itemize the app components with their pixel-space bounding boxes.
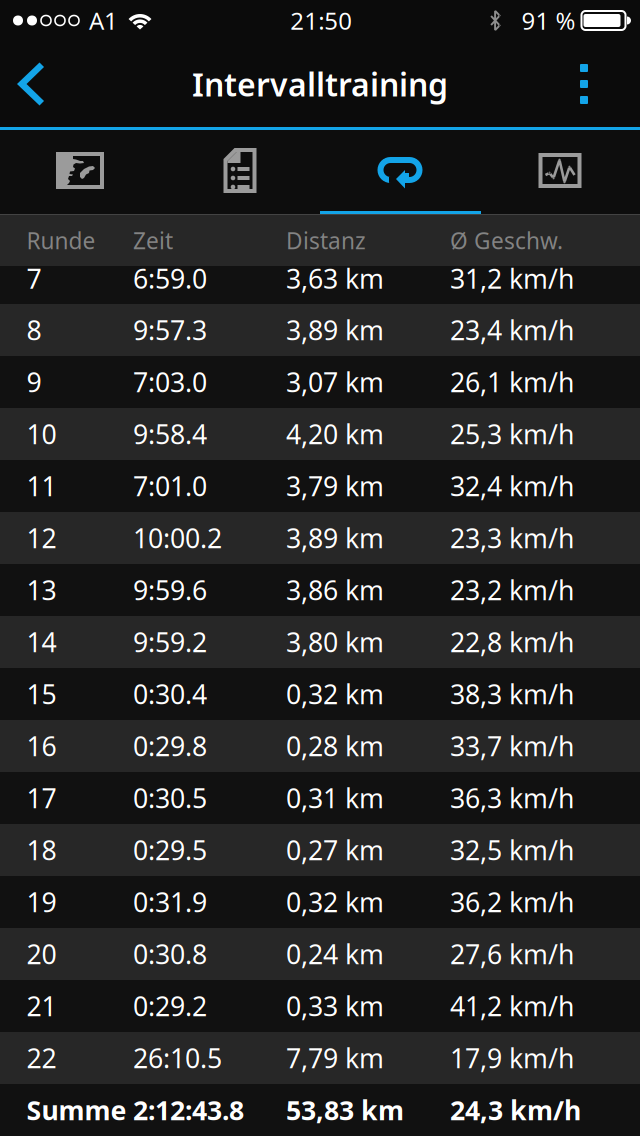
staticText: 2:12:43.8 bbox=[133, 1092, 244, 1128]
staticText: 19 bbox=[26, 884, 56, 920]
staticText: 7 bbox=[26, 261, 41, 296]
staticText: Runde bbox=[26, 225, 95, 255]
staticText: 10 bbox=[26, 416, 56, 452]
staticText: Zeit bbox=[133, 225, 173, 255]
staticText: 3,89 km bbox=[286, 312, 384, 348]
staticText: 15 bbox=[26, 676, 56, 712]
staticText: 4,20 km bbox=[286, 416, 384, 452]
staticText: 0:30.4 bbox=[133, 676, 207, 712]
staticText: Ø Geschw. bbox=[450, 225, 563, 255]
staticText: 3,07 km bbox=[286, 364, 384, 400]
button[interactable]: Laps bbox=[320, 130, 480, 211]
staticText: 6:59.0 bbox=[133, 261, 207, 296]
staticText: 9 bbox=[26, 364, 41, 400]
staticText: Intervalltraining bbox=[192, 63, 448, 105]
staticText: 0,32 km bbox=[286, 884, 384, 920]
staticText: A1 bbox=[89, 5, 118, 36]
staticText: 0:30.5 bbox=[133, 780, 207, 816]
staticText: 22,8 km/h bbox=[450, 624, 574, 660]
staticText: 26:10.5 bbox=[133, 1040, 222, 1076]
staticText: 16 bbox=[26, 728, 56, 764]
staticText: 11 bbox=[26, 468, 56, 504]
staticText: 9:58.4 bbox=[133, 416, 207, 452]
staticText: 31,2 km/h bbox=[450, 261, 574, 296]
staticText: 25,3 km/h bbox=[450, 416, 574, 452]
staticText: 21:50 bbox=[290, 5, 352, 36]
staticText: 0,33 km bbox=[286, 988, 384, 1024]
staticText: 22 bbox=[26, 1040, 56, 1076]
staticText: 23,4 km/h bbox=[450, 312, 574, 348]
staticText: 0:30.8 bbox=[133, 936, 207, 972]
staticText: 91 % bbox=[521, 5, 575, 36]
staticText: 23,2 km/h bbox=[450, 572, 574, 608]
staticText: 32,5 km/h bbox=[450, 832, 574, 868]
button[interactable]: Map bbox=[0, 130, 160, 211]
staticText: 0,24 km bbox=[286, 936, 384, 972]
staticText: Distanz bbox=[286, 225, 366, 255]
staticText: 18 bbox=[26, 832, 56, 868]
staticText: 7,79 km bbox=[286, 1040, 384, 1076]
staticText: 13 bbox=[26, 572, 56, 608]
staticText: 27,6 km/h bbox=[450, 936, 574, 972]
staticText: 17,9 km/h bbox=[450, 1040, 574, 1076]
staticText: 0,27 km bbox=[286, 832, 384, 868]
staticText: 0,31 km bbox=[286, 780, 384, 816]
staticText: 26,1 km/h bbox=[450, 364, 574, 400]
staticText: 17 bbox=[26, 780, 56, 816]
staticText: 36,3 km/h bbox=[450, 780, 574, 816]
staticText: 0:29.8 bbox=[133, 728, 207, 764]
staticText: 3,89 km bbox=[286, 520, 384, 556]
staticText: 14 bbox=[26, 624, 56, 660]
staticText: 41,2 km/h bbox=[450, 988, 574, 1024]
staticText: 38,3 km/h bbox=[450, 676, 574, 712]
staticText: 8 bbox=[26, 312, 41, 348]
button[interactable]: Back bbox=[0, 41, 96, 127]
staticText: Summe bbox=[26, 1092, 126, 1128]
staticText: 7:01.0 bbox=[133, 468, 207, 504]
staticText: 0:29.2 bbox=[133, 988, 207, 1024]
staticText: 12 bbox=[26, 520, 56, 556]
staticText: 9:59.6 bbox=[133, 572, 207, 608]
staticText: 7:03.0 bbox=[133, 364, 207, 400]
staticText: 53,83 km bbox=[286, 1092, 404, 1128]
button[interactable]: Charts bbox=[480, 130, 640, 211]
staticText: 9:59.2 bbox=[133, 624, 207, 660]
staticText: 0:29.5 bbox=[133, 832, 207, 868]
staticText: 0:31.9 bbox=[133, 884, 207, 920]
staticText: 9:57.3 bbox=[133, 312, 207, 348]
button[interactable]: Summary bbox=[160, 130, 320, 211]
staticText: 20 bbox=[26, 936, 56, 972]
staticText: 36,2 km/h bbox=[450, 884, 574, 920]
staticText: 10:00.2 bbox=[133, 520, 222, 556]
staticText: 3,86 km bbox=[286, 572, 384, 608]
staticText: 0,28 km bbox=[286, 728, 384, 764]
staticText: 33,7 km/h bbox=[450, 728, 574, 764]
staticText: 32,4 km/h bbox=[450, 468, 574, 504]
staticText: 24,3 km/h bbox=[450, 1092, 581, 1128]
staticText: 3,63 km bbox=[286, 261, 384, 296]
staticText: 21 bbox=[26, 988, 56, 1024]
staticText: 3,80 km bbox=[286, 624, 384, 660]
staticText: 0,32 km bbox=[286, 676, 384, 712]
button[interactable]: More options bbox=[544, 41, 640, 127]
staticText: 23,3 km/h bbox=[450, 520, 574, 556]
staticText: 3,79 km bbox=[286, 468, 384, 504]
